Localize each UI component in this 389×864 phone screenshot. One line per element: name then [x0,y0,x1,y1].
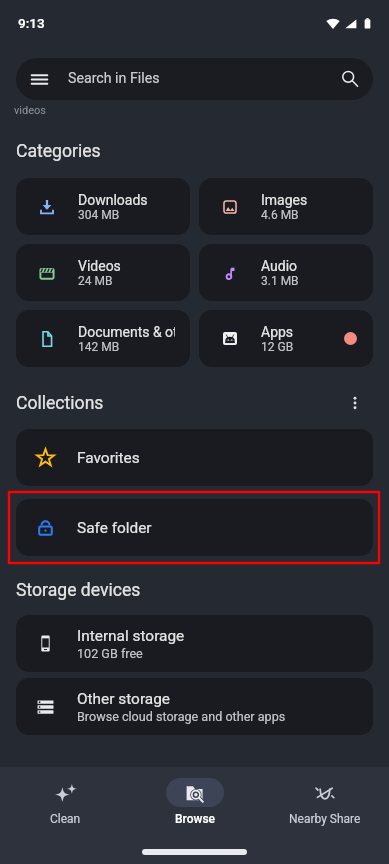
staticText: Storage devices [16,580,141,601]
button[interactable]: Audio [199,244,373,301]
other: Menu [31,71,48,88]
staticText: 9:13 [18,15,45,31]
button[interactable]: Browse [130,767,259,864]
staticText: Videos [78,258,121,274]
staticText: Apps [261,324,294,340]
staticText: Documents & other [78,324,175,340]
staticText: 102 GB free [77,646,143,661]
staticText: Clean [50,812,81,826]
button[interactable]: Safe folder [16,499,373,556]
button[interactable]: Clean [1,767,130,864]
staticText: Browse [175,812,215,826]
staticText: Nearby Share [289,812,361,826]
button[interactable]: Menu [16,58,373,100]
other: More options [347,395,363,411]
button[interactable]: Nearby Share [260,767,389,864]
button[interactable]: Downloads [16,178,190,235]
button[interactable]: Documents & other [16,310,190,367]
staticText: Safe folder [77,519,152,537]
other: Search [341,70,359,88]
button[interactable]: Other storage [16,678,373,735]
button[interactable]: Internal storage [16,615,373,672]
staticText: Other storage [77,690,170,708]
staticText: Downloads [78,192,148,208]
staticText: Browse cloud storage and other apps [77,709,286,724]
staticText: 12 GB [261,340,294,354]
staticText: videos [14,104,46,117]
staticText: Favorites [77,449,140,467]
staticText: Audio [261,258,298,274]
staticText: Categories [16,141,101,162]
staticText: 142 MB [78,340,120,354]
button[interactable]: Apps [199,310,373,367]
staticText: Images [261,192,308,208]
button[interactable]: Videos [16,244,190,301]
staticText: 3.1 MB [261,274,299,288]
button[interactable]: Images [199,178,373,235]
staticText: 4.6 MB [261,208,299,222]
staticText: 24 MB [78,274,113,288]
staticText: 304 MB [78,208,120,222]
staticText: Search in Files [68,70,160,87]
staticText: Collections [16,393,104,414]
button[interactable]: Favorites [16,429,373,486]
staticText: Internal storage [77,627,185,645]
